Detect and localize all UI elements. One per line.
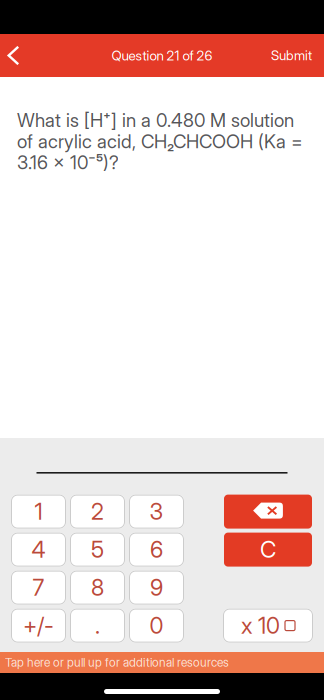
staticText: Question 21 of 26	[111, 47, 212, 64]
button[interactable]: Submit	[271, 34, 324, 77]
staticText: 7	[32, 574, 44, 601]
button[interactable]: 6	[129, 533, 184, 567]
staticText: 3	[149, 498, 163, 525]
button[interactable]: 9	[129, 571, 184, 605]
button[interactable]: Tap here or pull up for additional resou…	[0, 652, 324, 673]
staticText: 9	[150, 574, 163, 601]
button[interactable]: .	[70, 609, 125, 643]
staticText: Submit	[271, 47, 312, 63]
button[interactable]: x 10	[223, 609, 313, 643]
staticText: 1	[34, 498, 42, 525]
button[interactable]: Delete	[224, 495, 312, 529]
button[interactable]: 0	[129, 609, 184, 643]
staticText: 8	[91, 574, 104, 601]
button[interactable]: 2	[70, 495, 125, 529]
button[interactable]: Clear	[224, 533, 312, 567]
staticText: Tap here or pull up for additional resou…	[5, 655, 229, 670]
staticText: What is [H⁺] in a 0.480 M solution of ac…	[17, 109, 303, 174]
button[interactable]: 8	[70, 571, 125, 605]
button[interactable]: Back	[0, 34, 27, 77]
staticText: 6	[150, 536, 163, 563]
button[interactable]: 4	[11, 533, 66, 567]
staticText: 0	[149, 612, 163, 639]
button[interactable]: 7	[11, 571, 66, 605]
button[interactable]: +/-	[11, 609, 66, 643]
staticText: 5	[91, 536, 104, 563]
staticText: C	[260, 536, 276, 563]
button[interactable]: 3	[129, 495, 184, 529]
staticText: +/-	[23, 612, 54, 639]
staticText: 4	[31, 536, 45, 563]
staticText: x 10	[241, 612, 280, 639]
staticText: .	[95, 612, 100, 639]
button[interactable]: 5	[70, 533, 125, 567]
button[interactable]: 1	[11, 495, 66, 529]
staticText: 2	[91, 498, 104, 525]
